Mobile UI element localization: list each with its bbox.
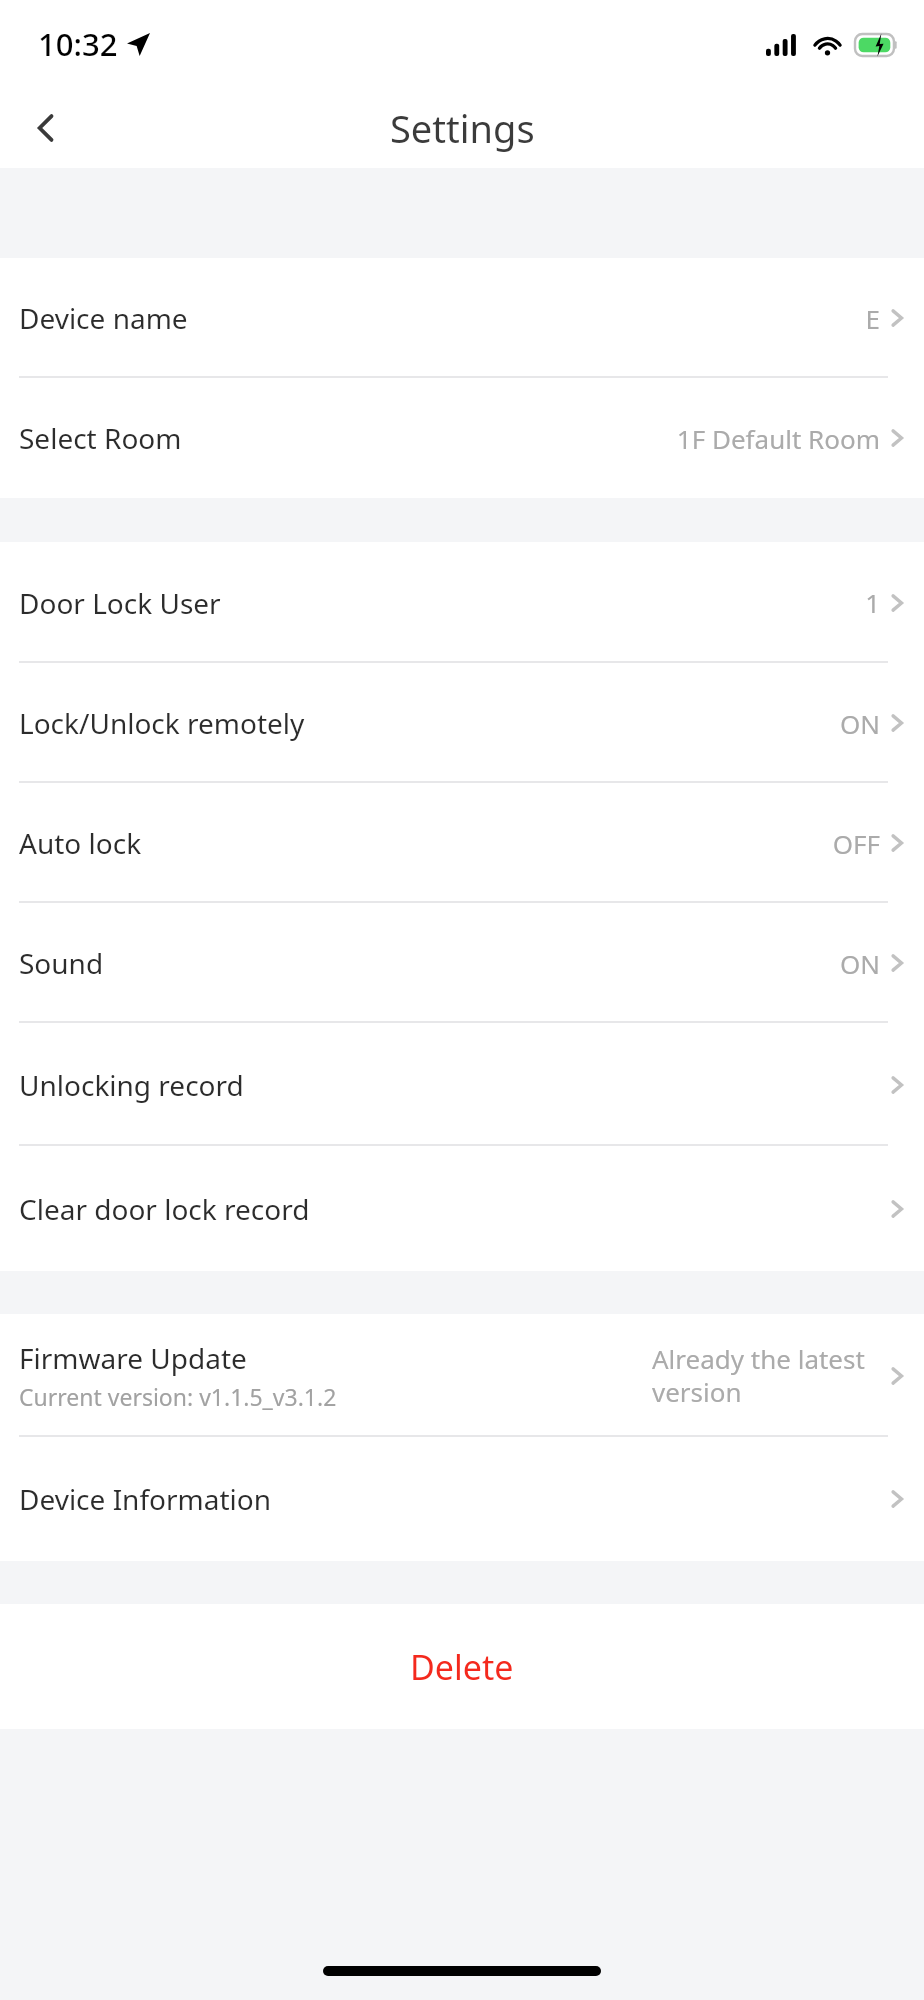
button[interactable]: Lock/Unlock remotely <box>0 663 924 783</box>
staticText: ON <box>839 946 880 981</box>
staticText: Select Room <box>19 419 182 457</box>
button[interactable]: Select Room <box>0 378 924 498</box>
staticText: ON <box>839 706 880 741</box>
button[interactable]: Clear door lock record <box>0 1146 924 1271</box>
staticText: Firmware Update <box>19 1339 247 1377</box>
button[interactable]: Sound <box>0 903 924 1023</box>
button[interactable]: Unlocking record <box>0 1023 924 1146</box>
staticText: Already the latest version <box>652 1341 880 1410</box>
staticText: Clear door lock record <box>19 1190 310 1228</box>
staticText: Device Information <box>19 1480 272 1518</box>
staticText: Lock/Unlock remotely <box>19 704 305 742</box>
staticText: Delete <box>410 1644 514 1690</box>
staticText: Door Lock User <box>19 584 221 622</box>
staticText: 10:32 <box>38 23 118 65</box>
staticText: Settings <box>390 102 535 154</box>
staticText: Sound <box>19 944 104 982</box>
button[interactable]: Door Lock User <box>0 542 924 663</box>
staticText: Unlocking record <box>19 1066 244 1104</box>
staticText: Current version: v1.1.5_v3.1.2 <box>19 1381 337 1412</box>
staticText: E <box>865 301 880 336</box>
button[interactable]: Back <box>24 104 72 152</box>
staticText: Device name <box>19 299 188 337</box>
button[interactable]: Delete <box>0 1604 924 1729</box>
button[interactable]: Auto lock <box>0 783 924 903</box>
button[interactable]: Device Information <box>0 1437 924 1561</box>
staticText: Auto lock <box>19 824 142 862</box>
button[interactable]: Device name <box>0 258 924 378</box>
staticText: 1 <box>865 585 880 620</box>
button[interactable]: Firmware Update <box>0 1314 924 1437</box>
staticText: OFF <box>832 826 880 861</box>
staticText: 1F Default Room <box>676 421 880 456</box>
